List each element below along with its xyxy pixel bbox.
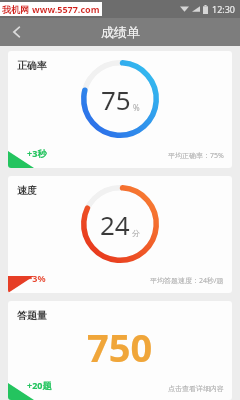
- staticText: 答题量: [17, 309, 47, 322]
- staticText: −3%: [27, 272, 46, 284]
- staticText: 点击查看详细内容: [168, 384, 224, 393]
- button[interactable]: 答题量: [8, 301, 232, 400]
- staticText: 分: [132, 228, 140, 238]
- staticText: 正确率: [17, 59, 47, 72]
- button[interactable]: 速度: [8, 176, 232, 293]
- staticText: 平均正确率：75%: [168, 151, 224, 161]
- staticText: 24: [100, 207, 130, 242]
- staticText: 我机网: [2, 4, 29, 15]
- staticText: 12:30: [212, 3, 236, 15]
- button[interactable]: Back: [0, 18, 34, 46]
- staticText: +3秒: [27, 147, 47, 159]
- staticText: %: [133, 102, 140, 113]
- staticText: 750: [87, 321, 153, 373]
- staticText: 75: [101, 82, 131, 117]
- staticText: www.5577.com: [32, 3, 100, 15]
- button[interactable]: 正确率: [8, 51, 232, 168]
- staticText: 成绩单: [101, 24, 140, 40]
- staticText: 速度: [17, 184, 37, 197]
- staticText: 平均答题速度：24秒/题: [150, 276, 224, 286]
- staticText: +20题: [27, 379, 52, 391]
